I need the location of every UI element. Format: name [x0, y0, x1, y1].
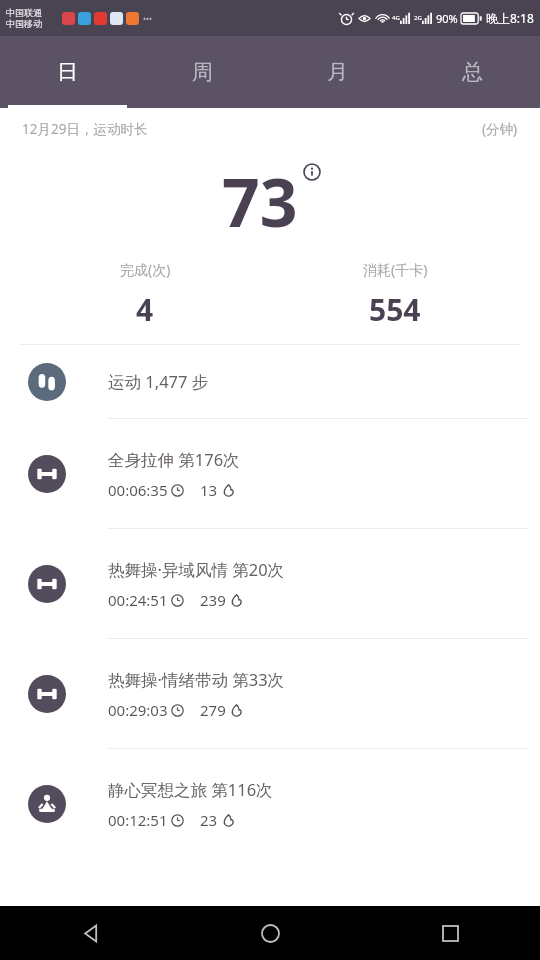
staticText: 239 — [200, 590, 226, 610]
staticText: 00:12:51 — [108, 810, 168, 830]
staticText: 13 — [200, 480, 218, 500]
staticText: 00:24:51 — [108, 590, 168, 610]
button[interactable]: Home — [180, 906, 360, 960]
staticText: 554 — [369, 289, 421, 330]
staticText: 运动 1,477 步 — [108, 370, 209, 393]
staticText: 日 — [57, 59, 78, 85]
staticText: 00:06:35 — [108, 480, 168, 500]
button[interactable]: 全身拉伸 第176次 — [0, 419, 540, 528]
staticText: 周 — [192, 59, 213, 85]
button[interactable]: 热舞操·异域风情 第20次 — [0, 529, 540, 638]
button[interactable]: 月 — [270, 36, 405, 108]
staticText: 279 — [200, 700, 226, 720]
staticText: 4G — [392, 14, 400, 22]
staticText: 全身拉伸 第176次 — [108, 448, 240, 471]
button[interactable]: 周 — [135, 36, 270, 108]
staticText: 2G — [414, 14, 422, 22]
button[interactable]: Back — [0, 906, 180, 960]
staticText: 12月29日，运动时长 — [22, 120, 148, 138]
staticText: 中国移动 — [6, 18, 42, 29]
button[interactable]: 日 — [0, 36, 135, 108]
staticText: 消耗(千卡) — [363, 260, 428, 279]
staticText: 静心冥想之旅 第116次 — [108, 778, 273, 801]
staticText: 23 — [200, 810, 218, 830]
staticText: 热舞操·情绪带动 第33次 — [108, 668, 285, 691]
button[interactable]: 热舞操·情绪带动 第33次 — [0, 639, 540, 748]
staticText: (分钟) — [482, 120, 518, 138]
staticText: 总 — [462, 59, 483, 85]
staticText: 中国联通 — [6, 7, 42, 18]
staticText: 热舞操·异域风情 第20次 — [108, 558, 285, 581]
button[interactable]: 运动 1,477 步 — [0, 345, 540, 418]
staticText: 月 — [327, 59, 348, 85]
button[interactable]: 静心冥想之旅 第116次 — [0, 749, 540, 858]
staticText: ••• — [143, 13, 153, 24]
staticText: 73 — [222, 156, 298, 246]
button[interactable]: Recents — [360, 906, 540, 960]
button[interactable]: Info — [302, 162, 322, 182]
staticText: 4 — [136, 289, 154, 330]
staticText: 完成(次) — [120, 260, 171, 279]
staticText: 00:29:03 — [108, 700, 168, 720]
button[interactable]: 总 — [405, 36, 540, 108]
staticText: 晚上8:18 — [486, 10, 534, 26]
staticText: 90% — [436, 11, 458, 26]
